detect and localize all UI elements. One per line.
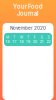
staticText: T	[27, 35, 29, 39]
staticText: 18	[19, 39, 23, 44]
staticText: Your Food	[13, 3, 43, 10]
staticText: T	[13, 35, 15, 39]
staticText: S	[48, 35, 50, 39]
staticText: 17	[12, 39, 16, 44]
staticText: 20	[33, 39, 37, 44]
staticText: 22	[47, 39, 51, 44]
staticText: F	[34, 35, 36, 39]
staticText: W	[20, 35, 23, 39]
staticText: November 2020	[10, 25, 46, 31]
staticText: Journal	[17, 10, 39, 17]
staticText: M	[6, 35, 9, 39]
staticText: S	[41, 35, 43, 39]
staticText: 21	[40, 39, 44, 44]
staticText: 16	[5, 39, 9, 44]
staticText: 19	[26, 39, 30, 44]
